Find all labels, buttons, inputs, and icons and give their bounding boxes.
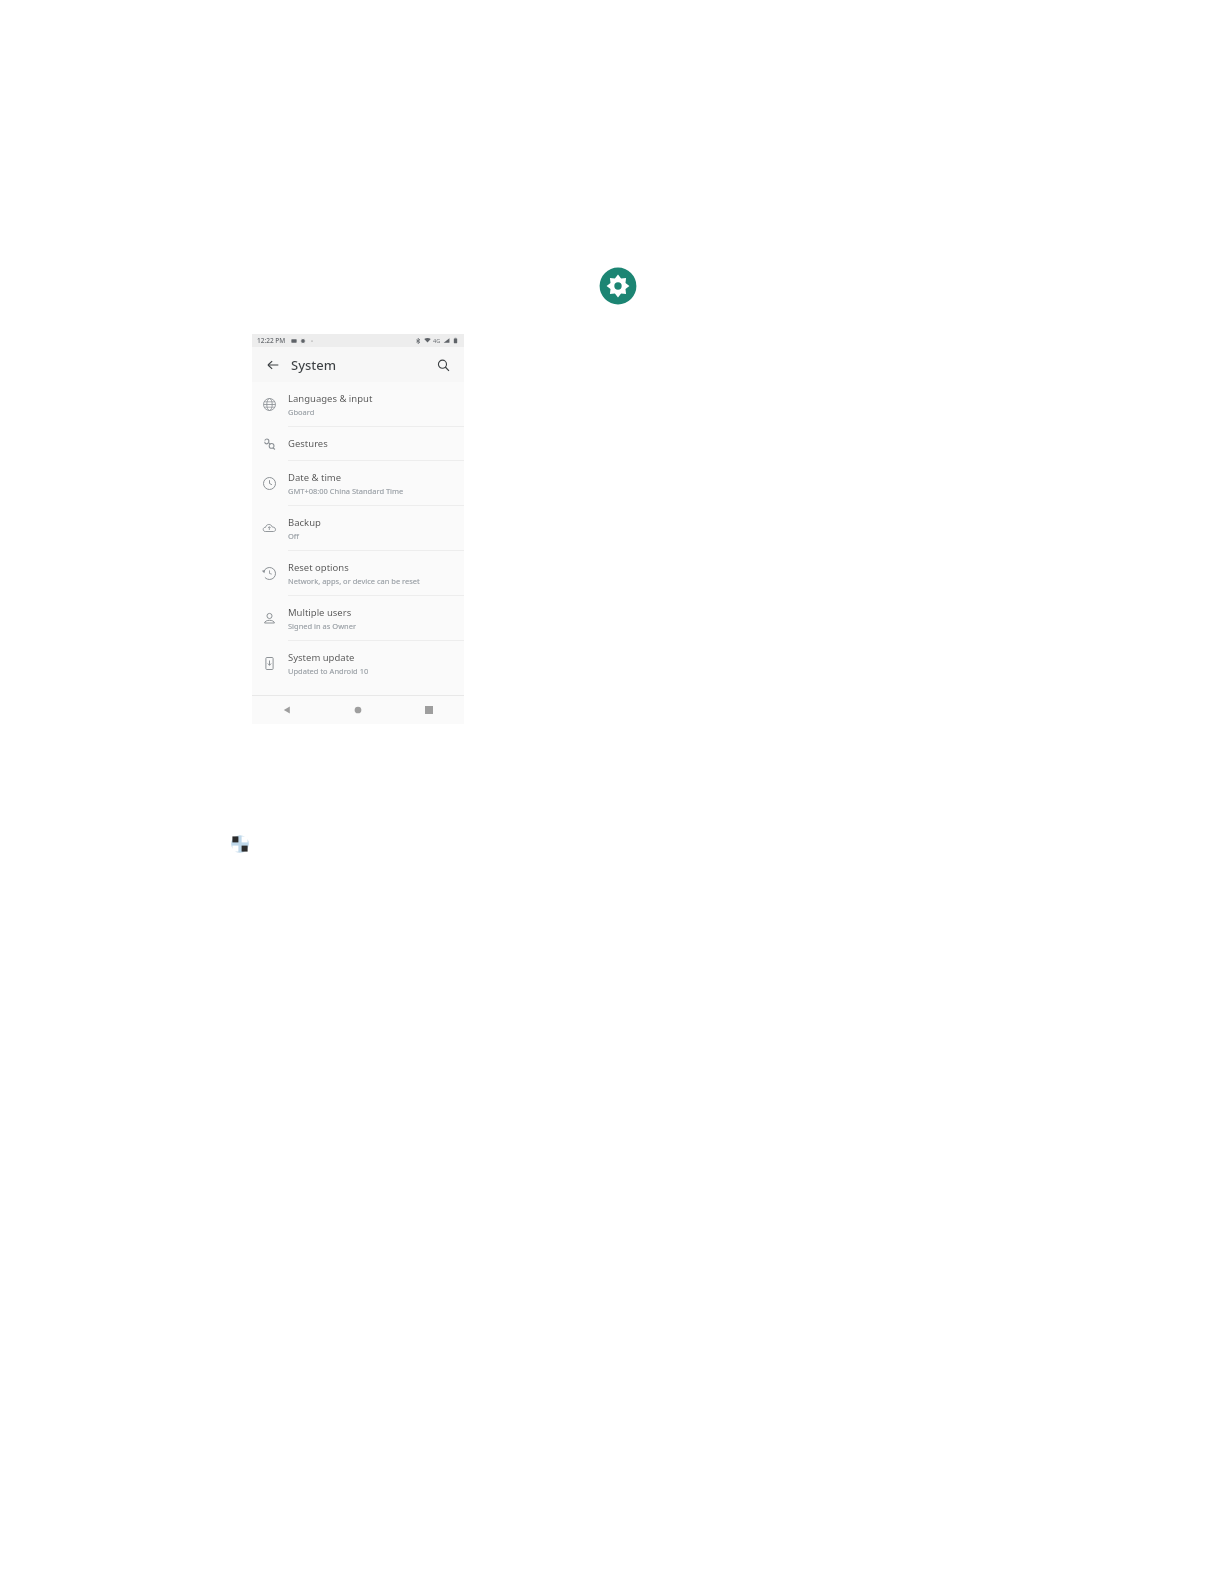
- button[interactable]: Date & time: [252, 461, 464, 505]
- staticText: 12:22 PM: [257, 336, 286, 345]
- button[interactable]: Back: [261, 353, 285, 377]
- staticText: GMT+08:00 China Standard Time: [288, 486, 404, 496]
- staticText: Date & time: [288, 471, 342, 484]
- staticText: System: [291, 356, 337, 374]
- button[interactable]: Home: [322, 696, 393, 724]
- button[interactable]: Reset options: [252, 551, 464, 595]
- staticText: Network, apps, or device can be reset: [288, 576, 420, 586]
- button[interactable]: Search: [431, 353, 455, 377]
- button[interactable]: System update: [252, 641, 464, 685]
- staticText: Languages & input: [288, 392, 373, 405]
- staticText: Updated to Android 10: [288, 666, 369, 676]
- staticText: Multiple users: [288, 606, 352, 619]
- staticText: Reset options: [288, 561, 349, 574]
- other: Decoration: [230, 834, 250, 854]
- button[interactable]: Back: [252, 696, 322, 724]
- staticText: Off: [288, 531, 300, 541]
- button[interactable]: Backup: [252, 506, 464, 550]
- staticText: 4G: [433, 337, 441, 344]
- staticText: Signed in as Owner: [288, 621, 357, 631]
- button[interactable]: Gestures: [252, 427, 464, 460]
- button[interactable]: Languages & input: [252, 382, 464, 426]
- staticText: Gestures: [288, 437, 328, 450]
- button[interactable]: Recent apps: [393, 696, 464, 724]
- other: Settings app icon: [598, 266, 638, 306]
- button[interactable]: Multiple users: [252, 596, 464, 640]
- staticText: System update: [288, 651, 355, 664]
- staticText: Backup: [288, 516, 321, 529]
- staticText: Gboard: [288, 407, 315, 417]
